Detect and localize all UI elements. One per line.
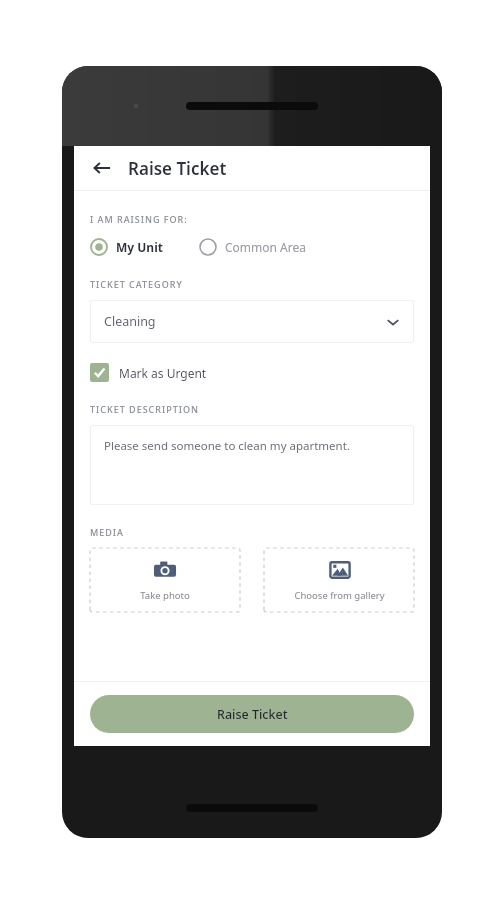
button[interactable]: My Unit — [90, 238, 163, 256]
button[interactable]: Common Area — [199, 238, 306, 256]
staticText: Cleaning — [104, 313, 156, 330]
button[interactable]: Choose from gallery — [264, 548, 414, 612]
staticText: TICKET DESCRIPTION — [90, 403, 199, 415]
staticText: Take photo — [140, 589, 190, 602]
staticText: Mark as Urgent — [119, 365, 207, 381]
button[interactable]: Take photo — [90, 548, 240, 612]
staticText: Choose from gallery — [294, 589, 385, 602]
staticText: Raise Ticket — [217, 706, 288, 723]
button[interactable]: Cleaning — [90, 300, 414, 343]
button[interactable]: Mark as Urgent — [90, 363, 207, 382]
staticText: My Unit — [116, 239, 163, 255]
staticText: Raise Ticket — [128, 157, 227, 180]
staticText: Common Area — [225, 239, 306, 255]
staticText: MEDIA — [90, 526, 124, 538]
button[interactable]: Please send someone to clean my apartmen… — [90, 425, 414, 505]
staticText: TICKET CATEGORY — [90, 278, 183, 290]
button[interactable]: Back — [87, 153, 117, 183]
staticText: I AM RAISING FOR: — [90, 213, 188, 225]
staticText: Please send someone to clean my apartmen… — [104, 438, 350, 454]
button[interactable]: Raise Ticket — [90, 695, 414, 733]
